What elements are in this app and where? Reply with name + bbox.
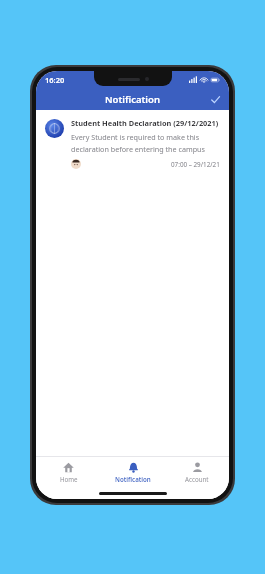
staticText: 07:00 – 29/12/21 — [171, 160, 220, 169]
staticText: Home — [60, 475, 78, 483]
button[interactable]: Student Health Declaration (29/12/2021) — [36, 110, 229, 175]
staticText: 16:20 — [45, 75, 65, 85]
staticText: Every Student is required to make this — [71, 132, 200, 142]
button[interactable]: Account — [165, 457, 229, 487]
staticText: Notification — [115, 475, 151, 483]
button[interactable]: Mark all as read — [207, 91, 223, 107]
staticText: Account — [185, 475, 209, 483]
staticText: Notification — [105, 93, 160, 106]
staticText: Student Health Declaration (29/12/2021) — [71, 118, 219, 128]
staticText: declaration before entering the campus — [71, 144, 205, 154]
button[interactable]: Notification — [101, 457, 165, 487]
button[interactable]: Home — [36, 457, 101, 487]
